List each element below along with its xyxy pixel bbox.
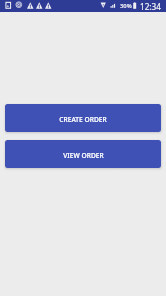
staticText: CREATE ORDER: [59, 115, 107, 124]
staticText: 30%: [120, 2, 132, 10]
button[interactable]: VIEW ORDER: [5, 140, 161, 168]
other: Status bar: [0, 0, 166, 12]
button[interactable]: CREATE ORDER: [5, 104, 161, 132]
staticText: VIEW ORDER: [63, 151, 104, 160]
staticText: 12:34: [140, 1, 161, 12]
